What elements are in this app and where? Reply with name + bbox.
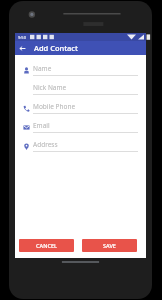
button[interactable]: SAVE — [82, 239, 137, 252]
staticText: Name — [33, 64, 52, 73]
staticText: Nick Name — [33, 83, 67, 92]
staticText: SAVE — [103, 242, 116, 249]
button[interactable]: Name — [19, 64, 138, 76]
staticText: Mobile Phone — [33, 102, 76, 111]
button[interactable]: Email — [19, 121, 138, 133]
button[interactable]: Nick Name — [19, 83, 138, 95]
staticText: Email — [33, 121, 50, 130]
staticText: Address — [33, 140, 58, 149]
button[interactable]: Address — [19, 140, 138, 152]
button[interactable]: CANCEL — [19, 239, 74, 252]
button[interactable]: Mobile Phone — [19, 102, 138, 114]
staticText: 9:50 — [18, 35, 26, 40]
button[interactable]: Navigate back — [15, 41, 29, 55]
staticText: CANCEL — [36, 242, 57, 249]
staticText: Add Contact — [34, 43, 78, 53]
